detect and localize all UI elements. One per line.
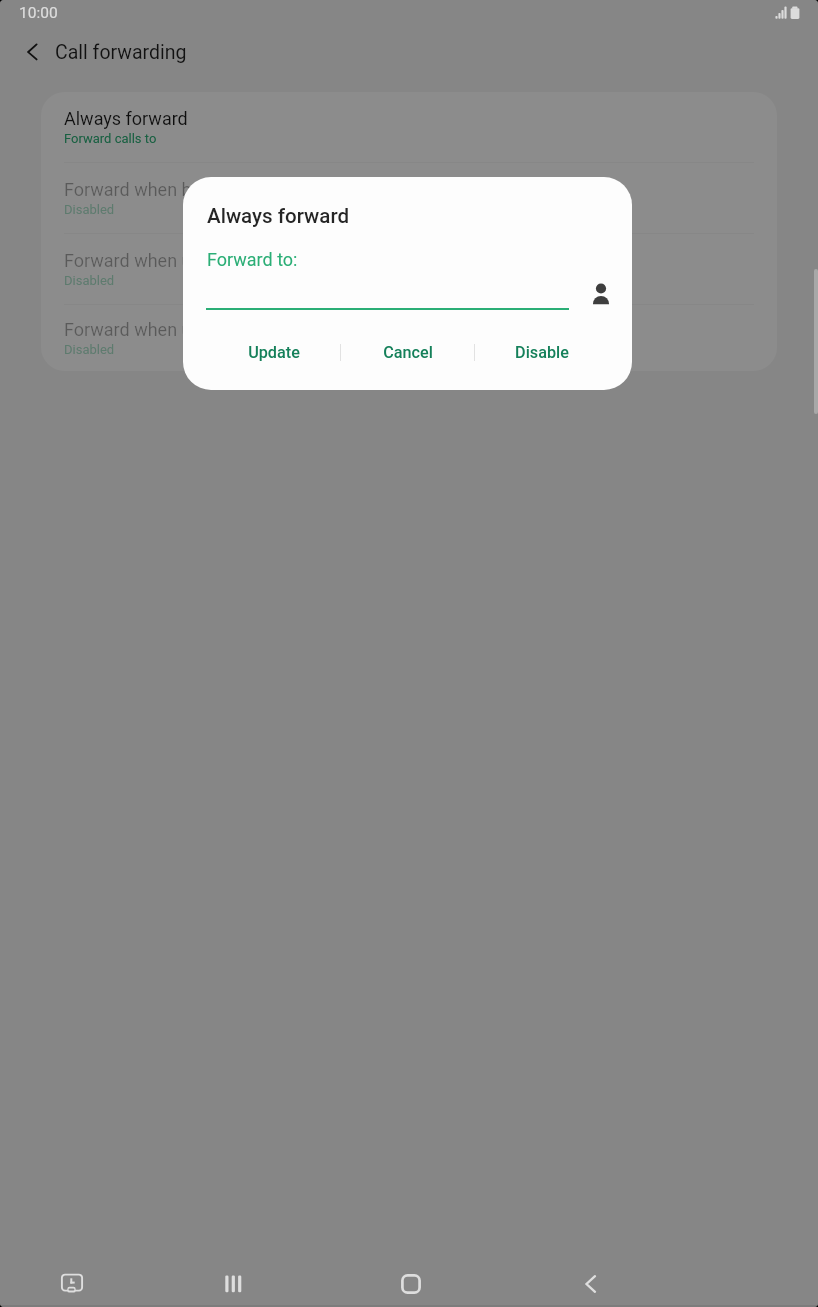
staticText: Forward when unanswered — [64, 250, 280, 271]
button[interactable]: Forward when busy — [41, 163, 777, 233]
staticText: Always forward — [207, 204, 349, 228]
staticText: Forward when unreachable — [64, 319, 280, 340]
staticText: Cancel — [383, 343, 433, 362]
button[interactable]: Recent apps — [208, 1260, 256, 1307]
staticText: Always forward — [64, 108, 188, 129]
button[interactable]: Hide keyboard — [48, 1260, 96, 1307]
button[interactable]: Disable — [475, 333, 608, 371]
button[interactable]: Cancel — [341, 333, 474, 371]
button[interactable]: Navigate up — [10, 28, 58, 76]
staticText: 10:00 — [19, 4, 58, 22]
button[interactable]: Forward when unanswered — [41, 234, 777, 304]
button[interactable]: Select contact — [583, 277, 619, 313]
staticText: Forward calls to — [64, 131, 157, 146]
staticText: Forward when busy — [64, 179, 220, 200]
button[interactable]: Back — [569, 1260, 617, 1307]
button[interactable]: Always forward — [41, 92, 777, 162]
staticText: Disable — [515, 343, 569, 362]
staticText: Forward to: — [207, 249, 298, 270]
staticText: Disabled — [64, 202, 115, 217]
button[interactable]: Home — [387, 1260, 435, 1307]
staticText: Disabled — [64, 273, 115, 288]
button[interactable]: Forward when unreachable — [41, 305, 777, 371]
staticText: Update — [248, 343, 300, 362]
button[interactable]: Update — [207, 333, 340, 371]
staticText: Disabled — [64, 342, 115, 357]
staticText: Call forwarding — [55, 41, 187, 64]
